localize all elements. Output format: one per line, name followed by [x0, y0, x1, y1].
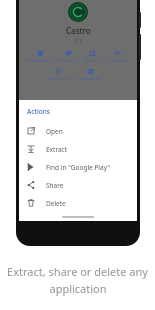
staticText: application: [49, 281, 107, 296]
staticText: Castro: [66, 25, 91, 36]
staticText: Certificate: [107, 58, 128, 64]
staticText: Extract, share or delete any: [7, 264, 148, 279]
button[interactable]: Resources: [47, 68, 70, 82]
button[interactable]: Extract: [19, 140, 137, 158]
button[interactable]: Share: [19, 176, 137, 194]
button[interactable]: Activities: [58, 50, 78, 64]
staticText: 3.3: [74, 37, 82, 44]
button[interactable]: Open: [19, 122, 137, 140]
button[interactable]: Find in "Google Play": [19, 158, 137, 176]
staticText: Activities: [59, 58, 77, 64]
staticText: Actions: [27, 107, 50, 116]
staticText: Services: [84, 58, 100, 64]
button[interactable]: Broadcasts: [78, 68, 102, 82]
staticText: Resources: [48, 76, 69, 82]
staticText: Share: [46, 181, 64, 190]
staticText: Open: [46, 127, 63, 136]
button[interactable]: Permissions: [27, 50, 53, 64]
button[interactable]: Services: [83, 50, 101, 64]
button[interactable]: Delete: [19, 194, 137, 212]
button[interactable]: Certificate: [106, 50, 129, 64]
staticText: Extract: [46, 145, 68, 154]
staticText: Permissions: [28, 58, 52, 64]
staticText: Find in "Google Play": [46, 163, 110, 172]
staticText: Broadcasts: [79, 76, 101, 82]
staticText: Delete: [46, 199, 66, 208]
